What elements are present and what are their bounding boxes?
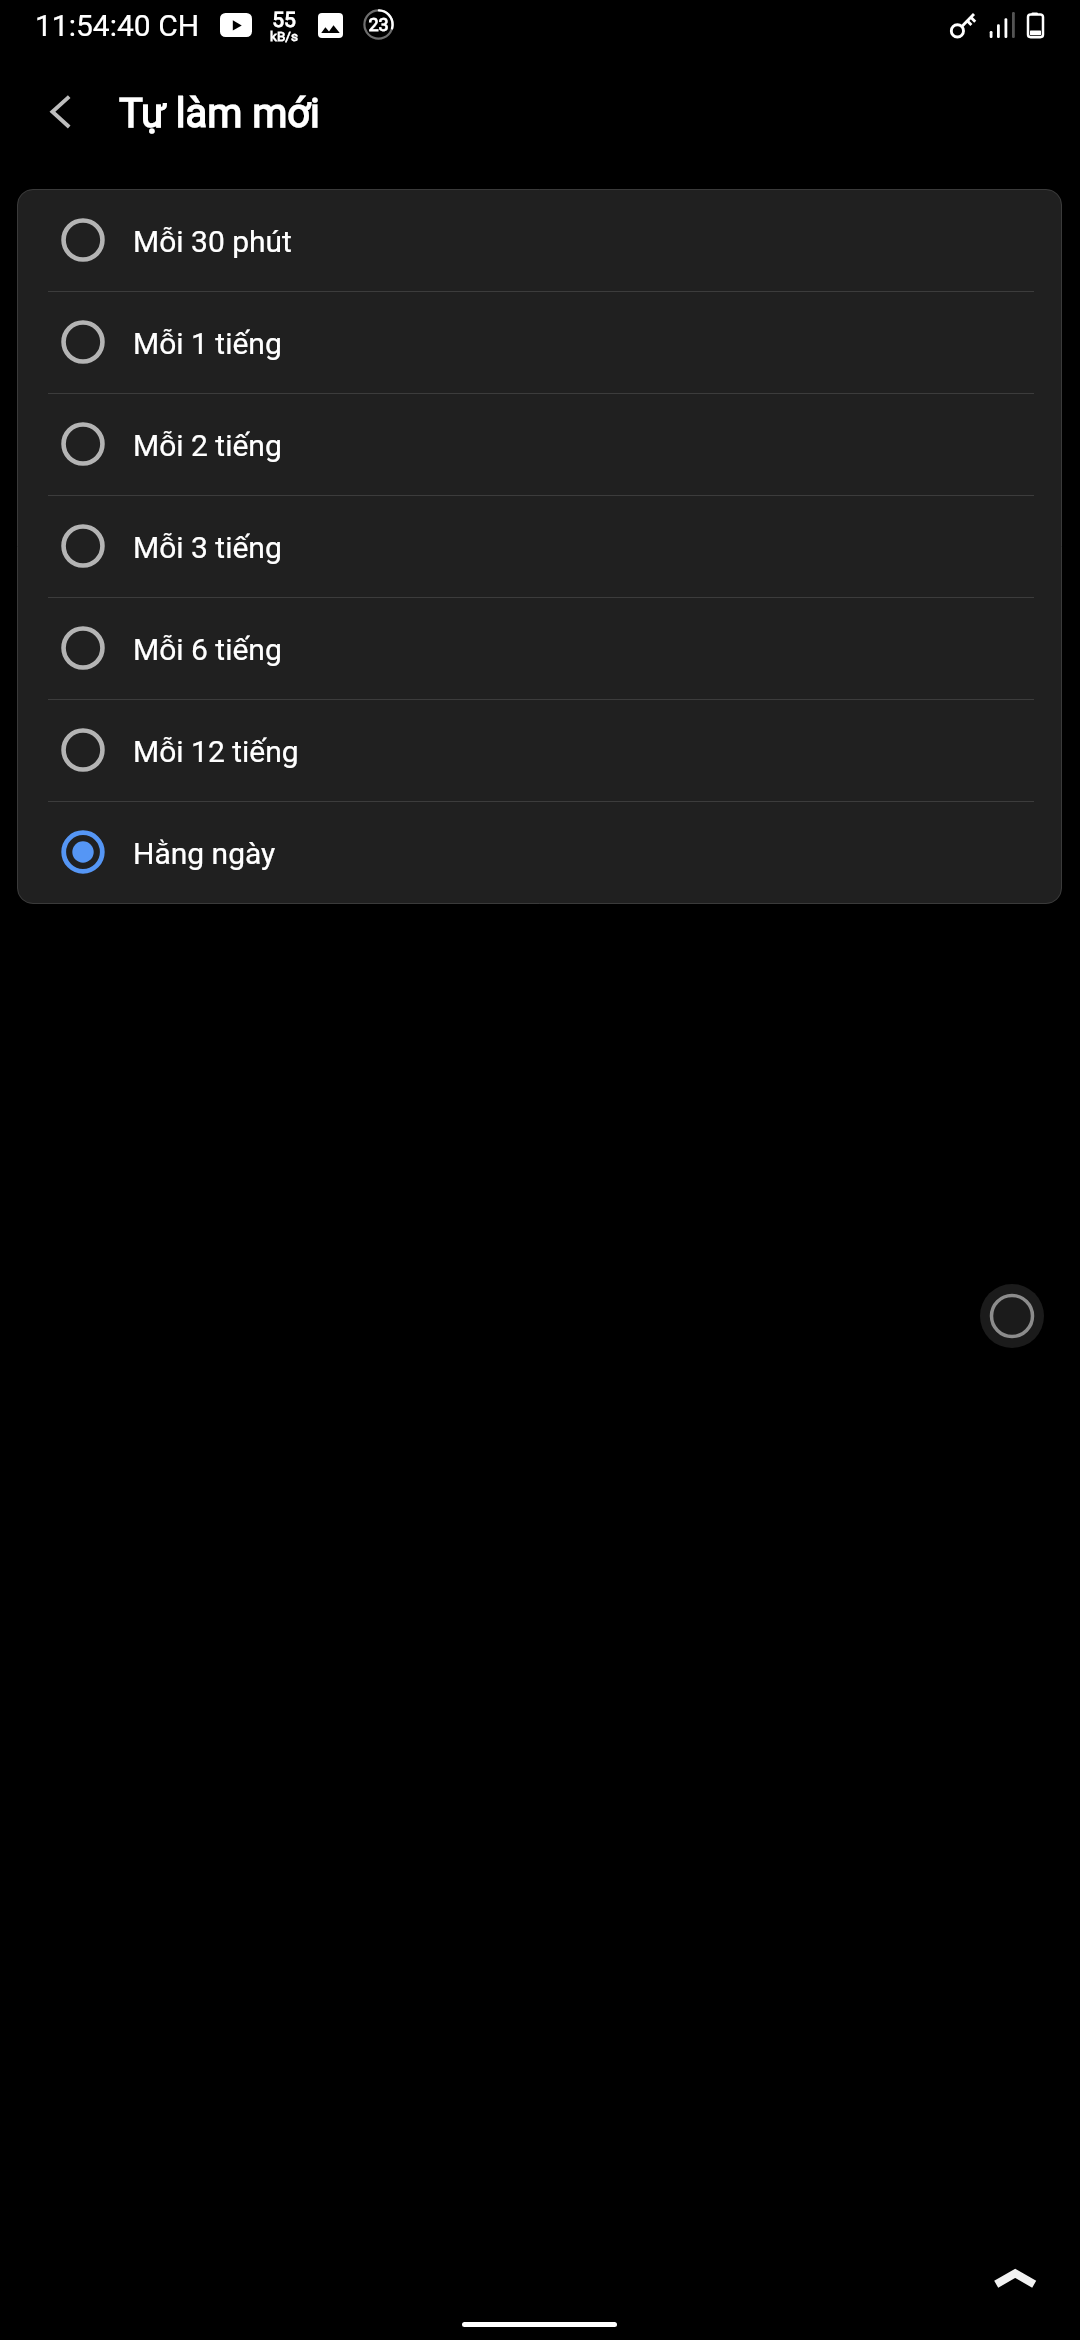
staticText: 55 xyxy=(262,8,306,33)
button[interactable]: Mỗi 1 tiếng xyxy=(17,291,1062,393)
button[interactable]: Mỗi 12 tiếng xyxy=(17,699,1062,801)
button[interactable]: Back xyxy=(21,74,97,150)
staticText: Mỗi 6 tiếng xyxy=(133,632,282,667)
button[interactable]: Mỗi 3 tiếng xyxy=(17,495,1062,597)
staticText: Tự làm mới xyxy=(119,90,320,137)
staticText: Mỗi 12 tiếng xyxy=(133,734,299,769)
button[interactable]: Assistive touch xyxy=(980,1284,1044,1348)
staticText: Mỗi 2 tiếng xyxy=(133,428,282,463)
button[interactable]: Mỗi 6 tiếng xyxy=(17,597,1062,699)
staticText: 23 xyxy=(363,14,394,35)
button[interactable]: Hằng ngày xyxy=(17,801,1062,903)
staticText: Mỗi 1 tiếng xyxy=(133,326,282,361)
staticText: Hằng ngày xyxy=(133,836,276,871)
staticText: 11:54:40 CH xyxy=(35,8,200,43)
staticText: Mỗi 30 phút xyxy=(133,224,292,259)
button[interactable]: Mỗi 30 phút xyxy=(17,189,1062,291)
button[interactable]: Expand xyxy=(979,2238,1051,2310)
button[interactable]: Mỗi 2 tiếng xyxy=(17,393,1062,495)
staticText: kB/s xyxy=(262,28,306,44)
staticText: Mỗi 3 tiếng xyxy=(133,530,282,565)
